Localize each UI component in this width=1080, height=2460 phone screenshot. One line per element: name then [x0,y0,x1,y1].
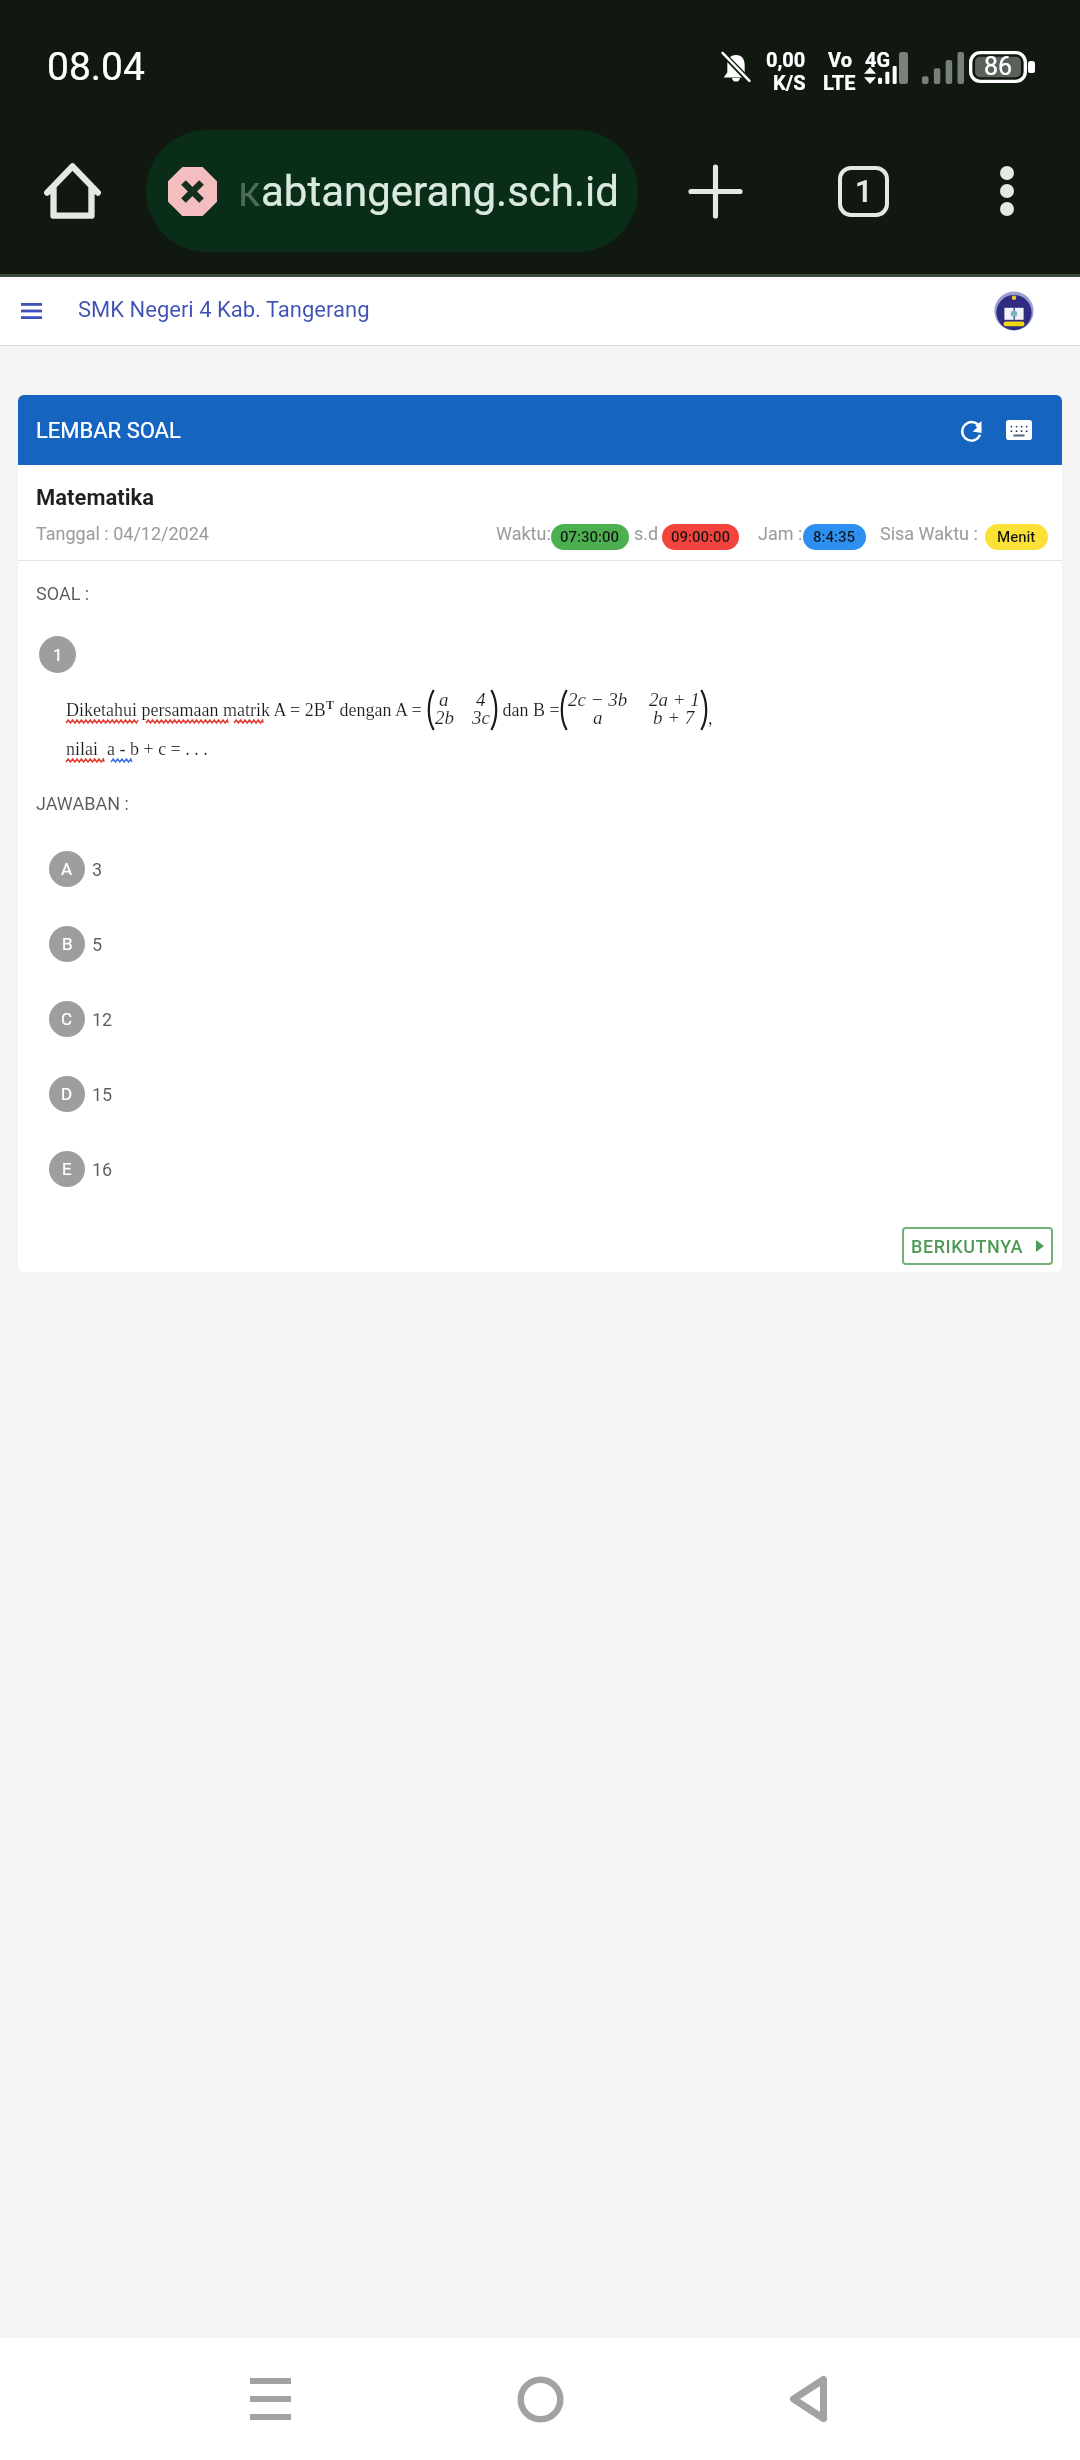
staticText: 09:00:00 [671,528,731,546]
staticText: LEMBAR SOAL [36,418,181,444]
staticText: 0,00 [766,48,806,71]
staticText: JAWABAN : [36,793,129,814]
staticText: nilai a - b + c = . . . [66,739,208,759]
staticText: 3 [92,859,103,880]
button[interactable]: Recent apps [210,2354,330,2444]
staticText: dan B = [498,700,560,720]
staticText: 1 [53,645,63,665]
staticText: 3c [472,707,490,728]
button[interactable]: Back [748,2354,868,2444]
staticText: 2b [435,707,454,728]
button[interactable]: Refresh [949,408,993,452]
button[interactable]: A [18,847,1062,891]
staticText: C [61,1009,73,1029]
staticText: Jam : [758,523,803,544]
button[interactable]: к [146,130,638,252]
staticText: B [62,934,73,954]
button[interactable]: Home [480,2354,600,2444]
staticText: Matematika [36,485,155,511]
staticText: 2a + 1 [649,689,700,710]
staticText: K/S [773,71,806,94]
staticText: b + 7 [653,707,695,728]
staticText: 12 [92,1009,113,1030]
button[interactable]: Keyboard [997,408,1041,452]
button[interactable]: Tabs [819,147,907,235]
staticText: 07:30:00 [560,528,620,546]
staticText: abtangerang.sch.id [261,167,619,216]
button[interactable]: D [18,1072,1062,1116]
staticText: 2c − 3b [568,689,628,710]
staticText: 4 [476,689,486,710]
staticText: Sisa Waktu : [880,523,978,544]
staticText: Waktu: [496,523,551,544]
staticText: 5 [92,934,103,955]
staticText: LTE [823,71,856,94]
button[interactable]: New tab [671,147,759,235]
staticText: 16 [92,1159,113,1180]
staticText: a [439,689,449,710]
staticText: Vo [828,48,852,71]
staticText: BERIKUTNYA [911,1236,1024,1257]
staticText: D [61,1084,73,1104]
button[interactable]: B [18,922,1062,966]
staticText: Tanggal : 04/12/2024 [36,523,209,544]
button[interactable]: E [18,1147,1062,1191]
staticText: A = 2B [270,700,326,720]
staticText: 86 [984,52,1013,81]
staticText: A [61,859,73,879]
staticText: , [708,708,713,728]
button[interactable]: SMK Negeri 4 Kab. Tangerang [78,297,370,323]
button[interactable]: Home [28,147,116,235]
staticText: a [593,707,603,728]
button[interactable]: C [18,997,1062,1041]
staticText: Menit [997,528,1036,546]
staticText: 1 [855,173,873,209]
staticText: Diketahui persamaan matrik [66,700,270,720]
button[interactable]: Menu [9,289,53,333]
staticText: 8:4:35 [813,528,856,546]
staticText: 4G [865,48,891,71]
button[interactable]: More options [963,147,1051,235]
staticText: E [62,1159,72,1179]
staticText: 08.04 [47,44,145,90]
staticText: dengan A = [335,700,427,720]
button[interactable]: BERIKUTNYA [902,1227,1053,1265]
staticText: T [326,698,335,711]
staticText: SOAL : [36,583,90,604]
staticText: 15 [92,1084,113,1105]
staticText: s.d [634,523,659,544]
staticText: к [238,167,261,216]
